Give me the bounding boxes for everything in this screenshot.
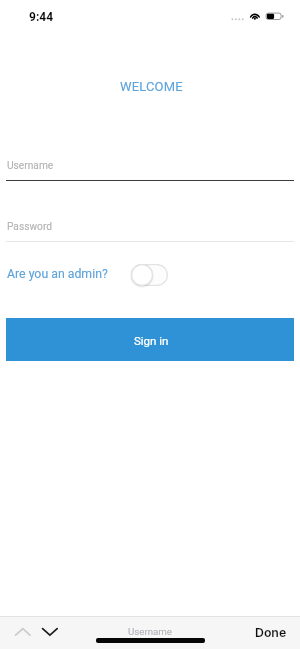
button[interactable]: Are you an admin? <box>7 267 108 281</box>
button[interactable]: Admin toggle <box>131 264 168 286</box>
staticText: Are you an admin? <box>7 267 108 281</box>
staticText: WELCOME <box>120 79 183 94</box>
button[interactable]: Sign in <box>6 318 294 361</box>
staticText: Username <box>7 160 54 172</box>
button[interactable]: Previous field <box>9 622 37 643</box>
button[interactable]: Done <box>248 622 293 643</box>
staticText: 9:44 <box>29 10 54 24</box>
staticText: Password <box>7 221 52 233</box>
button[interactable]: Password <box>7 221 300 233</box>
staticText: Sign in <box>134 334 169 347</box>
button[interactable]: Username <box>7 160 300 172</box>
staticText: Username <box>128 626 172 637</box>
staticText: Done <box>255 625 287 640</box>
button[interactable]: Next field <box>36 622 64 643</box>
